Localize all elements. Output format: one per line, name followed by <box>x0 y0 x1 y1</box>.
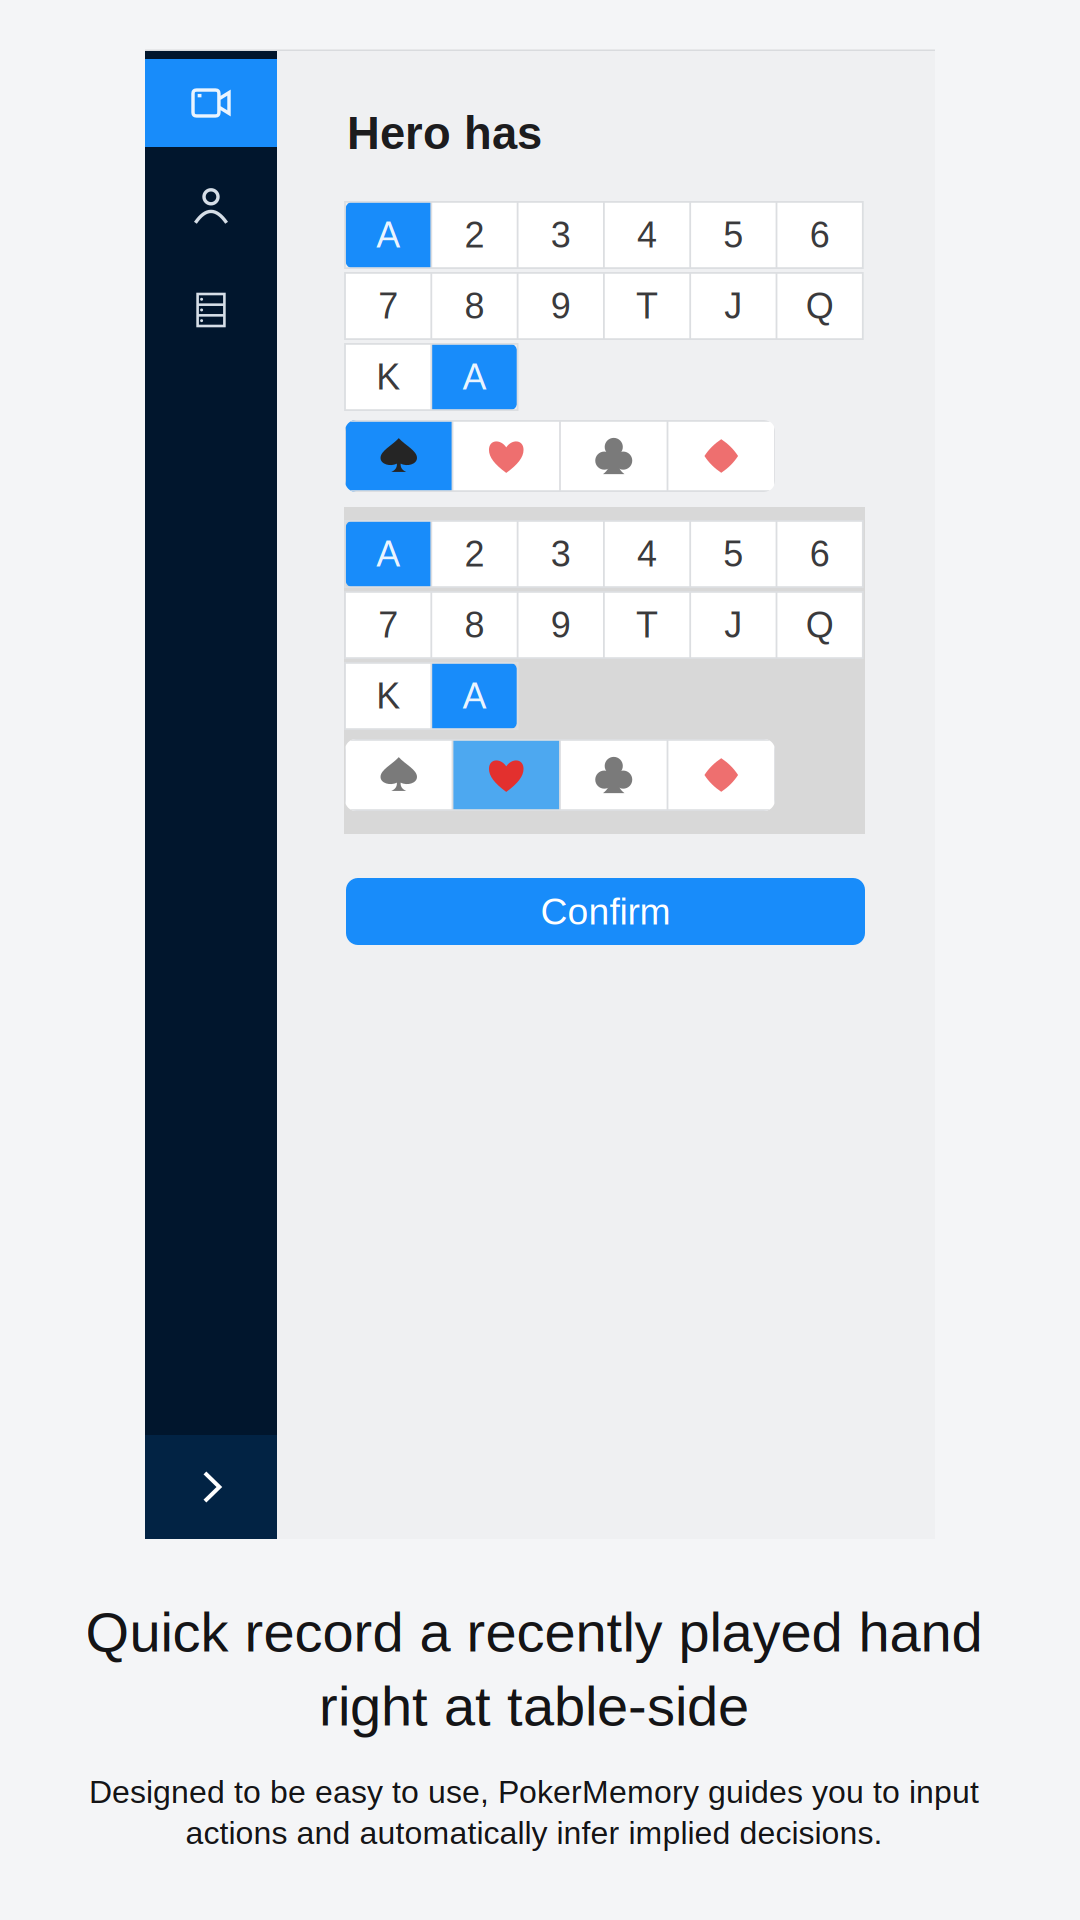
button[interactable]: 6 <box>776 520 863 588</box>
button[interactable]: 5 <box>690 201 776 269</box>
staticText: 8 <box>464 286 484 326</box>
button[interactable]: 2 <box>431 201 518 269</box>
staticText: Confirm <box>540 891 670 932</box>
button[interactable]: 8 <box>431 272 518 340</box>
button[interactable]: A <box>345 520 431 588</box>
staticText: Q <box>806 605 834 645</box>
staticText: 4 <box>637 215 657 255</box>
button[interactable]: 5 <box>690 520 776 588</box>
button[interactable]: Q <box>776 272 863 340</box>
staticText: J <box>724 605 742 645</box>
button[interactable]: J <box>690 591 776 659</box>
staticText: Quick record a recently played hand <box>85 1601 982 1663</box>
staticText: T <box>636 605 658 645</box>
staticText: 8 <box>464 605 484 645</box>
button[interactable]: T <box>604 591 690 659</box>
button[interactable]: K <box>345 662 431 730</box>
staticText: A <box>376 215 400 255</box>
button[interactable]: 4 <box>604 201 690 269</box>
button[interactable]: 3 <box>518 201 604 269</box>
button[interactable]: Q <box>776 591 863 659</box>
button[interactable]: 8 <box>431 591 518 659</box>
staticText: 9 <box>551 605 571 645</box>
button[interactable]: 2 <box>431 520 518 588</box>
button[interactable]: Hand history <box>145 265 277 355</box>
staticText: 7 <box>378 605 398 645</box>
button[interactable]: Diamonds <box>667 420 775 492</box>
button[interactable]: Hearts <box>452 420 560 492</box>
staticText: 4 <box>637 534 657 574</box>
staticText: 2 <box>464 534 484 574</box>
staticText: T <box>636 286 658 326</box>
staticText: K <box>376 357 400 397</box>
staticText: actions and automatically infer implied … <box>185 1815 882 1851</box>
button[interactable]: A <box>345 201 431 269</box>
staticText: 9 <box>551 286 571 326</box>
button[interactable]: 3 <box>518 520 604 588</box>
button[interactable]: 9 <box>518 591 604 659</box>
button[interactable]: 7 <box>345 591 431 659</box>
staticText: A <box>462 357 486 397</box>
staticText: Hero has <box>347 108 542 159</box>
staticText: A <box>376 534 400 574</box>
button[interactable]: K <box>345 343 431 411</box>
staticText: 7 <box>378 286 398 326</box>
button[interactable]: Diamonds <box>667 739 775 811</box>
staticText: A <box>462 676 486 716</box>
staticText: 3 <box>551 215 571 255</box>
button[interactable]: Record hand <box>145 59 277 147</box>
staticText: 3 <box>551 534 571 574</box>
button[interactable]: Confirm <box>346 878 865 945</box>
button[interactable]: 7 <box>345 272 431 340</box>
staticText: right at table-side <box>319 1675 749 1737</box>
button[interactable]: Spades <box>345 739 452 811</box>
button[interactable]: Expand sidebar <box>145 1435 277 1539</box>
staticText: 5 <box>723 215 743 255</box>
staticText: 6 <box>810 534 830 574</box>
button[interactable]: Hearts <box>452 739 560 811</box>
button[interactable]: J <box>690 272 776 340</box>
button[interactable]: T <box>604 272 690 340</box>
staticText: 5 <box>723 534 743 574</box>
button[interactable]: 4 <box>604 520 690 588</box>
staticText: Designed to be easy to use, PokerMemory … <box>89 1774 979 1810</box>
staticText: 2 <box>464 215 484 255</box>
button[interactable]: 9 <box>518 272 604 340</box>
button[interactable]: Spades <box>345 420 452 492</box>
button[interactable]: Clubs <box>560 420 667 492</box>
staticText: 6 <box>810 215 830 255</box>
button[interactable]: Players <box>145 147 277 265</box>
button[interactable]: A <box>431 343 518 411</box>
button[interactable]: 6 <box>776 201 863 269</box>
staticText: J <box>724 286 742 326</box>
staticText: K <box>376 676 400 716</box>
staticText: Q <box>806 286 834 326</box>
button[interactable]: Clubs <box>560 739 667 811</box>
button[interactable]: A <box>431 662 518 730</box>
